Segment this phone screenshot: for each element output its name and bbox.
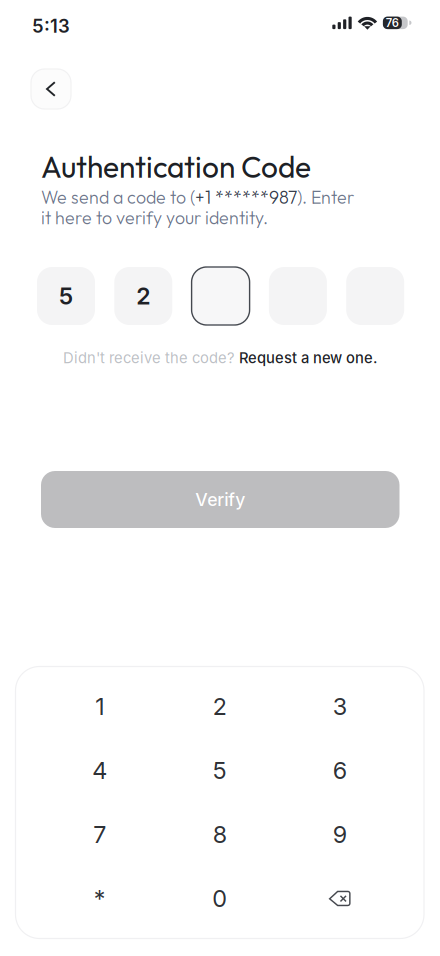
button[interactable]: 3 xyxy=(280,674,400,738)
button[interactable]: Code digit 5 xyxy=(37,267,95,325)
button[interactable]: 7 xyxy=(40,802,160,866)
staticText: it here to verify your identity. xyxy=(41,206,268,229)
staticText: 6 xyxy=(333,756,347,785)
staticText: * xyxy=(94,884,106,913)
staticText: 2 xyxy=(136,282,150,310)
staticText: ). Enter xyxy=(297,186,354,208)
button[interactable]: Empty code digit xyxy=(192,267,250,325)
staticText: 5:13 xyxy=(32,15,70,37)
button[interactable]: 8 xyxy=(160,802,280,866)
staticText: Authentication Code xyxy=(41,148,311,186)
staticText: 2 xyxy=(213,692,227,721)
staticText: +1 ******987 xyxy=(195,186,297,208)
staticText: Request a new one. xyxy=(239,349,377,367)
button[interactable]: Delete xyxy=(280,866,400,930)
staticText: 5 xyxy=(59,282,73,310)
staticText: 5 xyxy=(213,756,227,785)
button[interactable]: Request a new one. xyxy=(239,349,377,367)
staticText: 76 xyxy=(386,16,399,30)
button[interactable]: 2 xyxy=(160,674,280,738)
button[interactable]: 6 xyxy=(280,738,400,802)
staticText: 0 xyxy=(212,884,227,913)
staticText: 1 xyxy=(95,692,104,721)
staticText: We send a code to ( xyxy=(41,186,195,208)
staticText: 3 xyxy=(333,692,347,721)
button[interactable]: Code digit 2 xyxy=(114,267,172,325)
button[interactable]: * xyxy=(40,866,160,930)
staticText: Didn't receive the code? xyxy=(63,349,239,367)
button[interactable]: 9 xyxy=(280,802,400,866)
button[interactable]: 0 xyxy=(160,866,280,930)
button[interactable]: Verify xyxy=(41,471,399,528)
staticText: 8 xyxy=(213,820,227,849)
button[interactable]: 5 xyxy=(160,738,280,802)
button[interactable]: Back xyxy=(31,69,71,109)
staticText: 9 xyxy=(333,820,347,849)
button[interactable]: 4 xyxy=(40,738,160,802)
button[interactable]: 1 xyxy=(40,674,160,738)
staticText: Verify xyxy=(195,489,245,510)
staticText: 7 xyxy=(93,820,106,849)
staticText: 4 xyxy=(92,756,107,785)
